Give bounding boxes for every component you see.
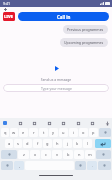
button[interactable]: Call in (18, 12, 109, 21)
button[interactable]: Type your message (3, 84, 109, 92)
staticText: j (67, 141, 69, 146)
button[interactable]: k (73, 139, 82, 148)
button[interactable]: Symbols (1, 161, 13, 170)
button[interactable]: g (43, 139, 52, 148)
staticText: . (92, 163, 93, 168)
button[interactable]: o (79, 128, 88, 137)
button[interactable]: p (89, 128, 98, 137)
staticText: n (78, 152, 81, 157)
button[interactable]: t (39, 128, 48, 137)
other: Add (4, 8, 7, 11)
button[interactable]: n (74, 150, 84, 159)
button[interactable]: v (52, 150, 62, 159)
button[interactable]: Translate (76, 121, 80, 125)
button[interactable]: a (5, 139, 13, 148)
staticText: i (73, 130, 75, 135)
staticText: x (34, 152, 37, 157)
staticText: u (62, 130, 65, 135)
button[interactable]: e (19, 128, 28, 137)
staticText: Type your message (41, 86, 72, 91)
staticText: Call in (57, 14, 71, 20)
button[interactable]: y (49, 128, 58, 137)
staticText: s (17, 141, 19, 146)
button[interactable]: GIF (32, 121, 36, 125)
staticText: 9:41 (3, 1, 11, 6)
button[interactable]: x (30, 150, 40, 159)
staticText: v (56, 152, 59, 157)
button[interactable]: LIVE (3, 12, 15, 21)
button[interactable]: Assistant (3, 121, 7, 125)
staticText: h (56, 141, 59, 146)
button[interactable]: f (33, 139, 42, 148)
button[interactable]: Upcoming programmes (60, 38, 108, 47)
staticText: z (23, 152, 25, 157)
button[interactable]: c (41, 150, 51, 159)
button[interactable]: m (85, 150, 95, 159)
button[interactable]: Comma (14, 161, 24, 170)
button[interactable]: s (14, 139, 22, 148)
staticText: w (12, 130, 16, 135)
button[interactable]: Delete (96, 150, 111, 159)
button[interactable]: Play (52, 64, 61, 73)
staticText: b (67, 152, 70, 157)
button[interactable]: d (23, 139, 32, 148)
staticText: Previous programmes (67, 27, 104, 32)
staticText: , (19, 163, 20, 168)
button[interactable]: Previous programmes (63, 25, 108, 34)
button[interactable]: Backspace (99, 128, 111, 137)
button[interactable]: Emoji (61, 121, 65, 125)
staticText: t (43, 130, 45, 135)
staticText: l (87, 141, 89, 146)
staticText: LIVE (4, 14, 14, 19)
button[interactable]: Enter (95, 139, 111, 148)
staticText: m (88, 152, 92, 157)
button[interactable]: Clipboard (47, 121, 51, 125)
staticText: k (76, 141, 79, 146)
button[interactable]: Emoji (75, 161, 86, 170)
staticText: f (37, 141, 39, 146)
button[interactable]: Shift (1, 150, 17, 159)
button[interactable]: q (1, 128, 9, 137)
button[interactable]: u (59, 128, 68, 137)
button[interactable]: Voice input (98, 161, 111, 170)
staticText: a (8, 141, 11, 146)
staticText: o (82, 130, 85, 135)
button[interactable]: l (83, 139, 92, 148)
staticText: p (92, 130, 95, 135)
button[interactable]: h (53, 139, 62, 148)
button[interactable]: z (18, 150, 29, 159)
button[interactable]: r (29, 128, 38, 137)
staticText: Send us a message (0, 77, 112, 82)
button[interactable]: i (69, 128, 78, 137)
staticText: q (4, 130, 7, 135)
staticText: r (33, 130, 35, 135)
staticText: g (46, 141, 49, 146)
staticText: d (26, 141, 29, 146)
staticText: c (45, 152, 47, 157)
button[interactable]: Expand (105, 121, 109, 125)
button[interactable]: Stickers (18, 121, 22, 125)
button[interactable]: b (63, 150, 73, 159)
staticText: Upcoming programmes (64, 40, 104, 45)
button[interactable]: Settings (90, 121, 94, 125)
staticText: e (22, 130, 25, 135)
button[interactable]: j (63, 139, 72, 148)
staticText: y (52, 130, 55, 135)
button[interactable]: w (10, 128, 18, 137)
